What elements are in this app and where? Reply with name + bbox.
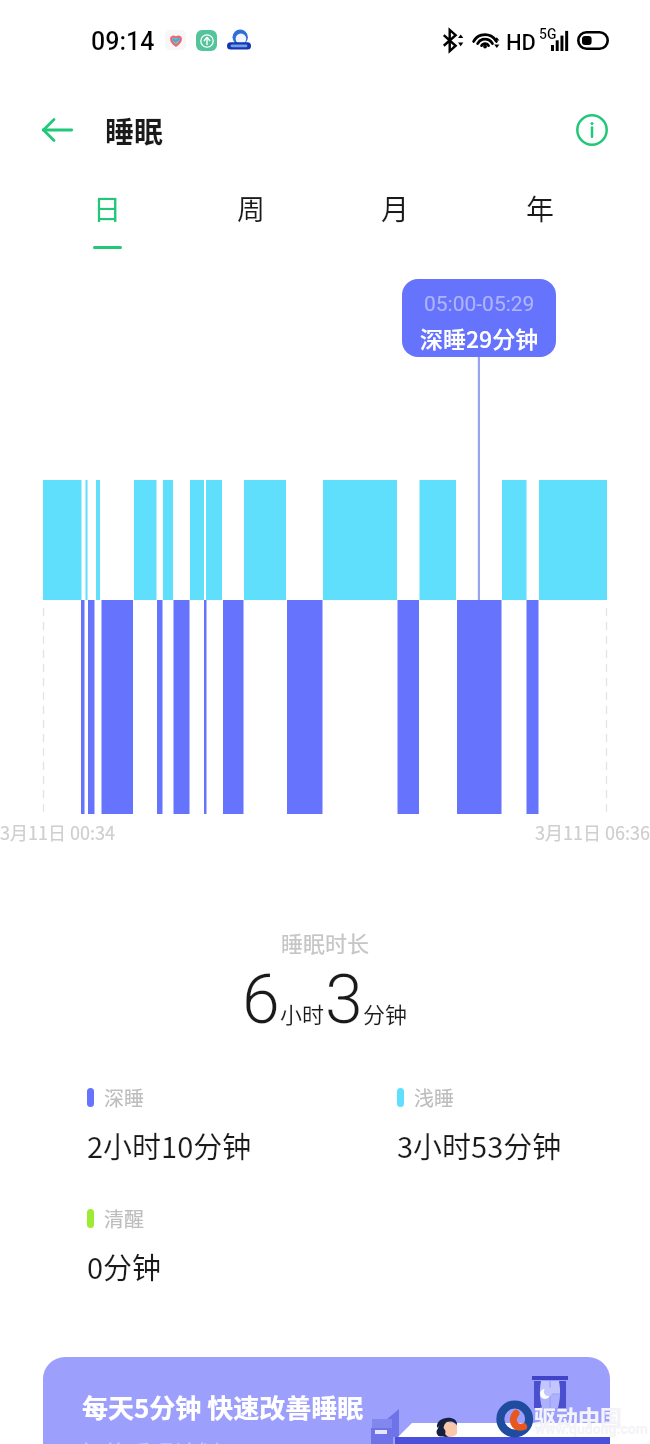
staticText: 2小时10分钟 xyxy=(87,1124,252,1166)
button[interactable]: 清醒 xyxy=(87,1204,162,1287)
staticText: 3 xyxy=(325,960,363,1040)
staticText: 05:00-05:29 xyxy=(424,292,535,317)
staticText: HD xyxy=(506,30,536,56)
staticText: www.qudong.com xyxy=(535,1421,648,1437)
button[interactable]: Info xyxy=(568,106,616,154)
staticText: 09:14 xyxy=(91,27,155,56)
staticText: 年 xyxy=(526,188,555,229)
staticText: 每天5分钟 快速改善睡眠 xyxy=(82,1388,364,1426)
staticText: 分钟 xyxy=(363,997,408,1029)
button[interactable]: 浅睡 xyxy=(397,1083,562,1166)
staticText: 3月11日 00:34 xyxy=(0,819,115,845)
staticText: 睡眠 xyxy=(105,109,164,151)
button[interactable]: 05:00-05:29 xyxy=(402,279,556,357)
staticText: 驱动中国 xyxy=(534,1400,623,1432)
button[interactable]: 每天5分钟 快速改善睡眠 xyxy=(43,1357,610,1444)
staticText: 日 xyxy=(93,188,122,229)
staticText: 3小时53分钟 xyxy=(397,1124,562,1166)
staticText: 5G xyxy=(539,26,557,42)
button[interactable]: 深睡 xyxy=(87,1083,252,1166)
button[interactable]: 年 xyxy=(500,181,580,253)
staticText: 月 xyxy=(381,188,410,229)
staticText: 深睡29分钟 xyxy=(420,321,539,354)
staticText: 0分钟 xyxy=(87,1245,162,1287)
staticText: 6 xyxy=(242,960,280,1040)
staticText: 睡眠时长 xyxy=(281,926,370,958)
staticText: 3月11日 06:36 xyxy=(535,819,650,845)
staticText: 周 xyxy=(237,188,266,229)
staticText: 智能睡眠计划 xyxy=(82,1435,220,1444)
staticText: 清醒 xyxy=(104,1204,144,1233)
button[interactable]: Back xyxy=(29,102,85,158)
button[interactable]: 周 xyxy=(211,181,291,253)
staticText: 小时 xyxy=(280,997,325,1029)
button[interactable]: 月 xyxy=(355,181,435,253)
button[interactable]: 日 xyxy=(67,181,147,253)
staticText: 浅睡 xyxy=(414,1083,454,1112)
staticText: 深睡 xyxy=(104,1083,144,1112)
